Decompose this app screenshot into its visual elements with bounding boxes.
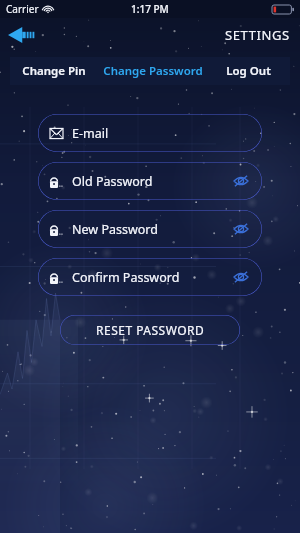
staticText: Log Out <box>226 63 271 79</box>
button[interactable]: Back <box>8 24 48 46</box>
staticText: SETTINGS <box>225 26 290 44</box>
staticText: New Password <box>72 221 158 238</box>
staticText: E-mail <box>72 125 109 142</box>
button[interactable]: Show password <box>232 172 250 190</box>
button[interactable]: Old Password <box>38 162 262 200</box>
staticText: Old Password <box>72 173 153 190</box>
button[interactable]: Change Pin <box>10 57 98 85</box>
staticText: Carrier <box>6 2 39 16</box>
button[interactable]: New Password <box>38 210 262 248</box>
button[interactable]: RESET PASSWORD <box>60 315 240 345</box>
button[interactable]: Confirm Password <box>38 258 262 296</box>
button[interactable]: E-mail <box>38 114 262 152</box>
button[interactable]: Show password <box>232 268 250 286</box>
staticText: 1:17 PM <box>131 2 169 16</box>
staticText: Change Password <box>103 63 203 79</box>
staticText: Change Pin <box>22 63 86 79</box>
staticText: RESET PASSWORD <box>96 322 205 338</box>
staticText: Confirm Password <box>72 269 180 286</box>
button[interactable]: Change Password <box>98 57 207 85</box>
button[interactable]: Log Out <box>207 57 290 85</box>
button[interactable]: SETTINGS <box>223 22 292 48</box>
button[interactable]: Show password <box>232 220 250 238</box>
